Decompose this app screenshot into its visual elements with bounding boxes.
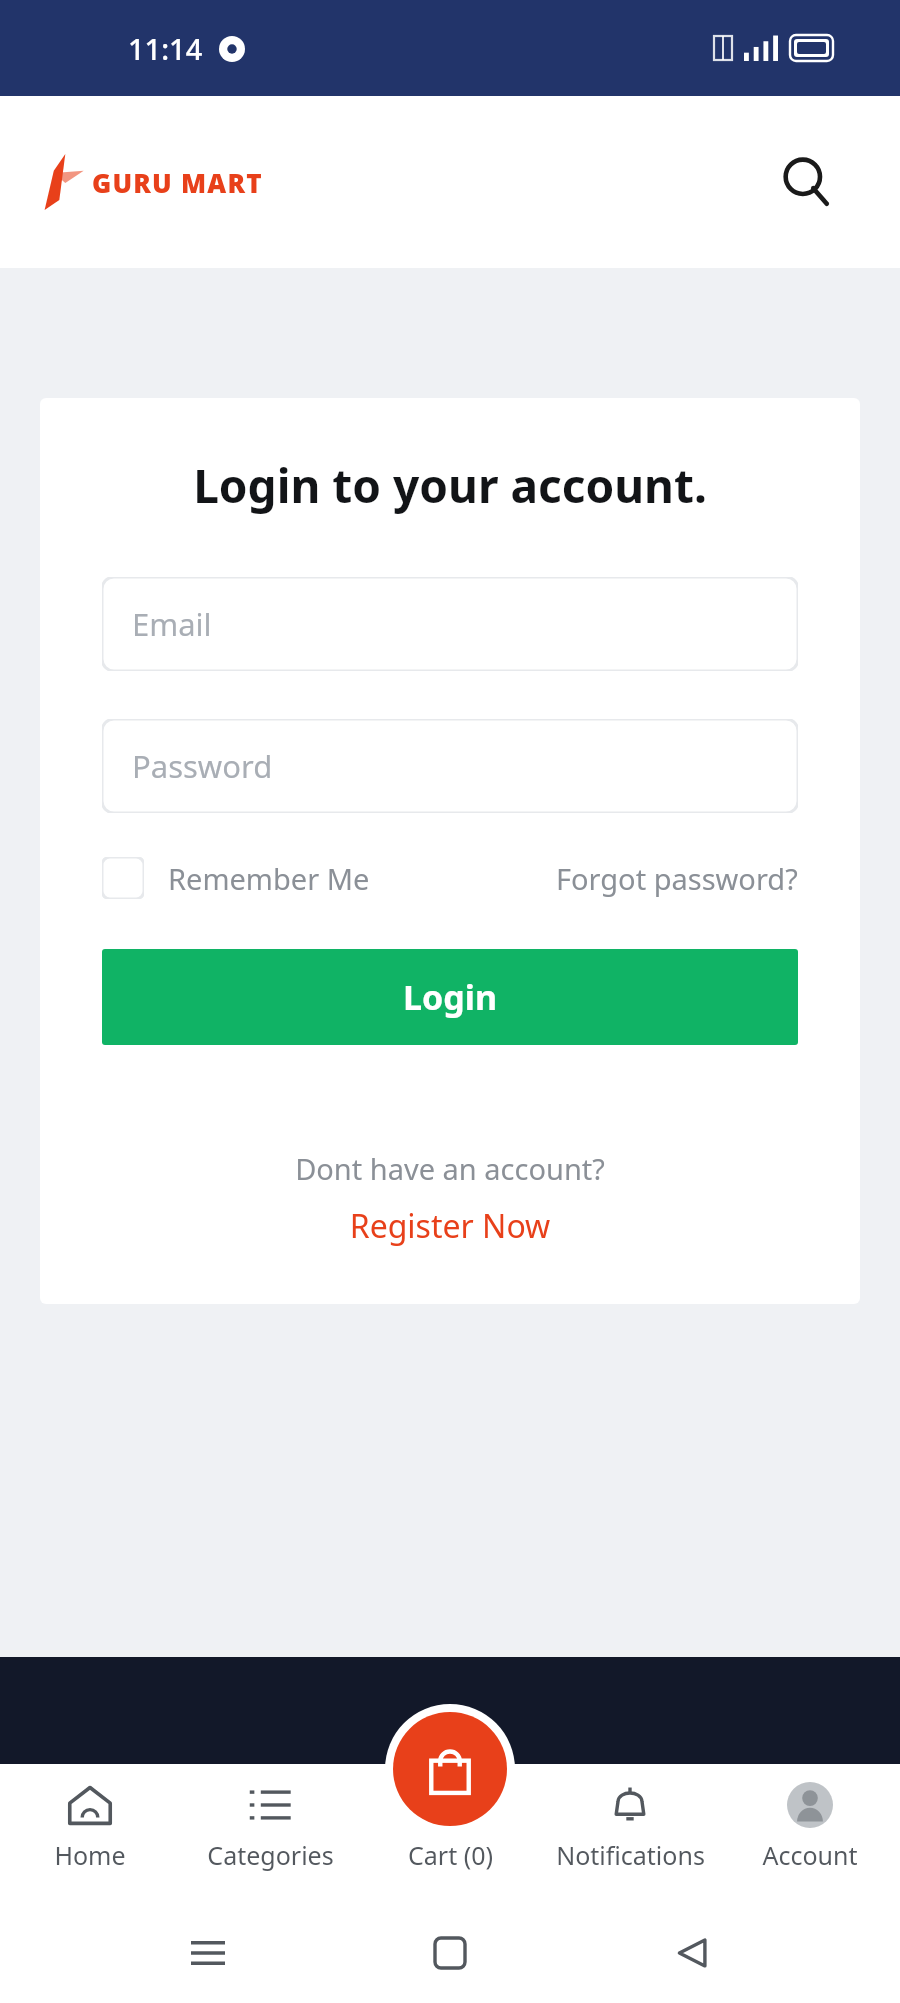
staticText: GURU MART — [92, 165, 263, 200]
staticText: Password — [132, 745, 273, 787]
button[interactable]: Login — [102, 949, 798, 1045]
button[interactable]: Cart (0) — [360, 1782, 540, 1903]
button[interactable]: Home — [415, 1918, 485, 1988]
button[interactable]: Account — [720, 1782, 900, 1903]
button[interactable]: Back — [658, 1918, 728, 1988]
button[interactable]: Notifications — [540, 1782, 720, 1903]
staticText: Notifications — [556, 1838, 705, 1872]
button[interactable]: Search — [770, 145, 844, 219]
staticText: Home — [54, 1838, 126, 1872]
staticText: 11:14 — [128, 29, 203, 68]
button[interactable]: Home — [0, 1782, 180, 1903]
staticText: Remember Me — [168, 859, 370, 898]
button[interactable]: Cart — [393, 1712, 507, 1826]
staticText: Email — [132, 603, 212, 645]
staticText: Cart (0) — [408, 1838, 493, 1872]
staticText: Forgot password? — [556, 859, 798, 898]
button[interactable]: Categories — [180, 1782, 360, 1903]
staticText: Dont have an account? — [102, 1149, 798, 1188]
staticText: Login — [403, 974, 498, 1020]
button[interactable]: Remember Me — [102, 857, 370, 899]
button[interactable]: Password — [102, 719, 798, 813]
staticText: Categories — [207, 1838, 334, 1872]
button[interactable]: Register Now — [102, 1204, 798, 1248]
staticText: Account — [762, 1838, 858, 1872]
button[interactable]: Forgot password? — [556, 859, 798, 898]
button[interactable]: Recents — [173, 1918, 243, 1988]
button[interactable]: Guru Mart home — [40, 154, 263, 210]
staticText: Register Now — [102, 1204, 798, 1248]
staticText: Login to your account. — [102, 454, 798, 517]
button[interactable]: Email — [102, 577, 798, 671]
